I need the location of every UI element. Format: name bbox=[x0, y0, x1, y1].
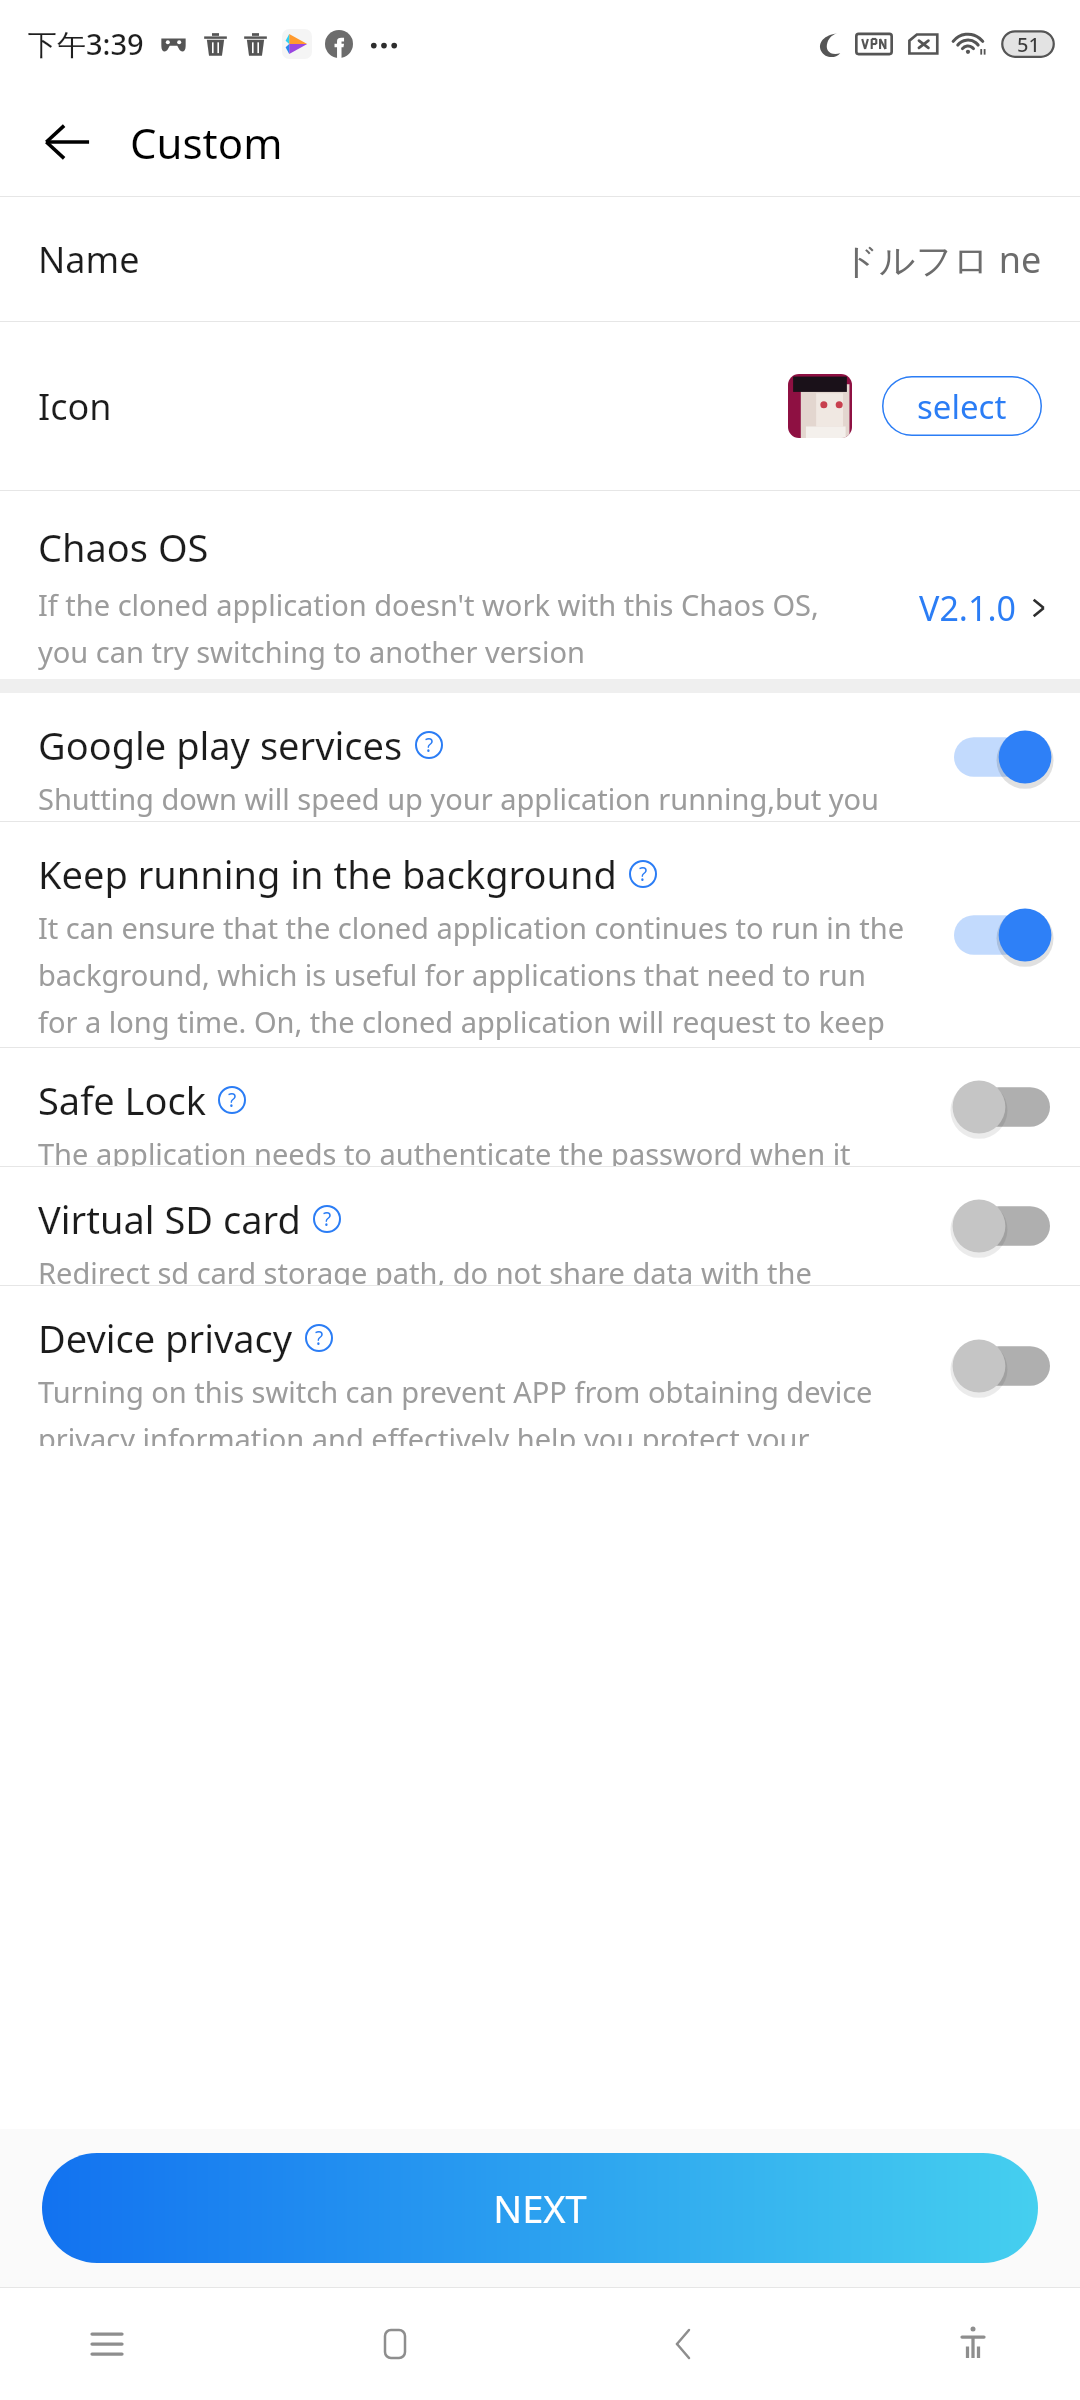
staticText: 51 bbox=[1017, 31, 1040, 58]
staticText: Name bbox=[38, 235, 140, 284]
button[interactable]: Google play services bbox=[0, 693, 1080, 821]
staticText: Shutting down will speed up your applica… bbox=[38, 779, 912, 821]
staticText: ? bbox=[323, 1206, 332, 1232]
button[interactable]: Virtual SD card bbox=[0, 1167, 1080, 1285]
staticText: ? bbox=[639, 861, 648, 887]
button[interactable]: Icon bbox=[0, 322, 1080, 490]
staticText: Chaos OS bbox=[38, 521, 209, 573]
staticText: Custom bbox=[130, 114, 283, 171]
button[interactable]: Device privacy bbox=[0, 1286, 1080, 1446]
button[interactable]: Toggle off bbox=[954, 1193, 1050, 1259]
button[interactable]: Safe Lock bbox=[0, 1048, 1080, 1166]
staticText: Safe Lock bbox=[38, 1074, 206, 1126]
staticText: The application needs to authenticate th… bbox=[38, 1134, 912, 1166]
button[interactable]: Back bbox=[635, 2295, 733, 2393]
button[interactable]: Keep running in the background bbox=[0, 822, 1080, 1047]
staticText: ドルフロ ne bbox=[842, 235, 1042, 284]
staticText: Virtual SD card bbox=[38, 1193, 301, 1245]
staticText: Redirect sd card storage path, do not sh… bbox=[38, 1253, 912, 1285]
button[interactable]: NEXT bbox=[42, 2153, 1038, 2263]
staticText: NEXT bbox=[493, 2182, 587, 2234]
staticText: It can ensure that the cloned applicatio… bbox=[38, 908, 912, 1047]
button[interactable]: Recent apps bbox=[58, 2295, 156, 2393]
button[interactable]: Name bbox=[0, 197, 1080, 321]
button[interactable]: Toggle on bbox=[954, 902, 1050, 968]
button[interactable]: Toggle on bbox=[954, 724, 1050, 790]
button[interactable]: Home bbox=[346, 2295, 444, 2393]
button[interactable]: Toggle off bbox=[954, 1333, 1050, 1399]
button[interactable]: Chaos OS bbox=[0, 491, 1080, 679]
staticText: Turning on this switch can prevent APP f… bbox=[38, 1372, 912, 1446]
staticText: ? bbox=[425, 732, 434, 758]
staticText: ? bbox=[228, 1087, 237, 1113]
staticText: select bbox=[917, 384, 1007, 429]
staticText: If the cloned application doesn't work w… bbox=[38, 585, 820, 671]
button[interactable]: select bbox=[882, 376, 1042, 436]
button[interactable]: Toggle off bbox=[954, 1074, 1050, 1140]
staticText: Google play services bbox=[38, 719, 403, 771]
staticText: V2.1.0 bbox=[919, 585, 1016, 631]
staticText: Device privacy bbox=[38, 1312, 293, 1364]
button[interactable]: Accessibility bbox=[924, 2295, 1022, 2393]
staticText: Keep running in the background bbox=[38, 848, 617, 900]
staticText: Icon bbox=[38, 382, 112, 431]
button[interactable]: Back bbox=[24, 99, 110, 185]
staticText: 下午3:39 bbox=[28, 24, 144, 64]
staticText: ? bbox=[315, 1325, 324, 1351]
